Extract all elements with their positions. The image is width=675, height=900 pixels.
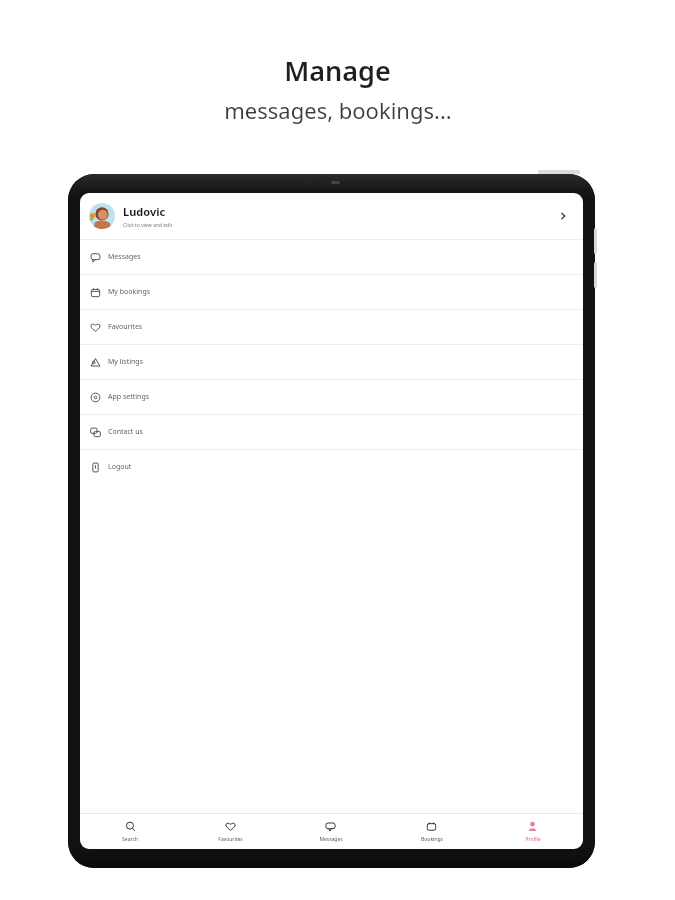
staticText: App settings [108, 392, 150, 402]
staticText: Logout [108, 462, 132, 472]
button[interactable]: My bookings [80, 275, 583, 309]
button[interactable]: Search [80, 814, 180, 849]
button[interactable]: Favourites [80, 310, 583, 344]
button[interactable]: Bookings [381, 814, 482, 849]
staticText: Contact us [108, 427, 143, 437]
staticText: Messages [319, 836, 343, 843]
button[interactable]: Messages [80, 240, 583, 274]
button[interactable]: App settings [80, 380, 583, 414]
staticText: Favourites [218, 836, 243, 843]
staticText: Click to view and edit [123, 222, 173, 229]
staticText: Search [122, 836, 138, 843]
button[interactable]: Ludovic [80, 193, 583, 239]
staticText: My bookings [108, 287, 151, 297]
staticText: My listings [108, 357, 144, 367]
staticText: Profile [525, 836, 541, 843]
staticText: messages, bookings... [224, 95, 452, 125]
button[interactable]: Contact us [80, 415, 583, 449]
staticText: Favourites [108, 322, 143, 332]
staticText: Messages [108, 252, 141, 262]
button[interactable]: My listings [80, 345, 583, 379]
button[interactable]: Logout [80, 450, 583, 484]
staticText: Bookings [421, 836, 443, 843]
staticText: Ludovic [123, 204, 166, 219]
button[interactable]: Open profile [553, 206, 573, 226]
button[interactable]: Messages [280, 814, 381, 849]
button[interactable]: Favourites [180, 814, 280, 849]
button[interactable]: Profile [482, 814, 583, 849]
staticText: Manage [284, 52, 391, 89]
